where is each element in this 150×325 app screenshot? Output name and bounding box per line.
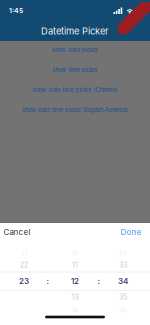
button[interactable]: show date picker (50, 42, 100, 57)
staticText: show date picker (52, 46, 98, 53)
button[interactable]: show date time picker (Chinese) (30, 82, 119, 97)
staticText: 11 (72, 261, 78, 269)
staticText: 22 (20, 261, 28, 269)
staticText: Cancel (3, 227, 30, 237)
staticText: 10 (72, 249, 78, 257)
staticText: show time picker (52, 66, 97, 73)
button[interactable]: Done (117, 224, 144, 240)
staticText: Datetime Picker (41, 25, 109, 37)
staticText: 32 (119, 249, 127, 257)
staticText: 35 (119, 293, 127, 301)
staticText: Done (120, 227, 141, 237)
staticText: 12 (71, 276, 79, 286)
staticText: 34 (118, 276, 128, 286)
button[interactable]: Cancel (0, 224, 33, 240)
staticText: 33 (119, 261, 127, 269)
staticText: 23 (19, 276, 29, 286)
staticText: 21 (21, 249, 27, 257)
button[interactable]: show time picker (50, 62, 99, 77)
staticText: 14 (72, 306, 78, 314)
staticText: : (97, 276, 100, 286)
staticText: show date time picker (English-America) (22, 106, 128, 113)
staticText: 13 (71, 293, 78, 301)
staticText: 1:45 (9, 6, 23, 15)
button[interactable]: show date time picker (English-America) (20, 102, 130, 117)
staticText: 36 (119, 306, 127, 314)
staticText: : (46, 276, 49, 286)
staticText: show date time picker (Chinese) (32, 86, 117, 93)
